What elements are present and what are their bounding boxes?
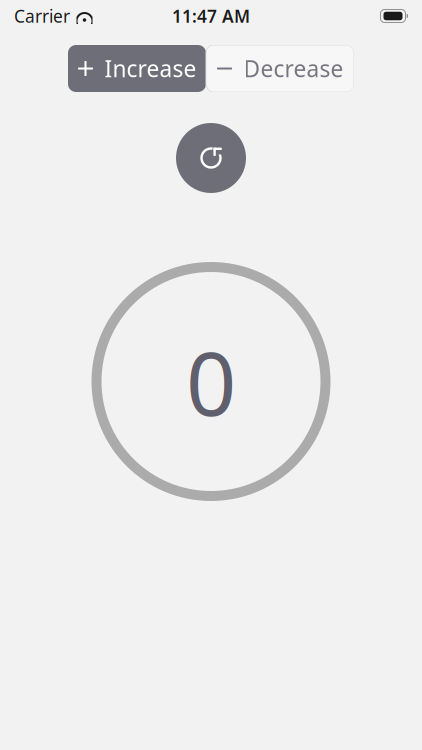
button[interactable]: Increase	[68, 45, 206, 92]
button[interactable]: Decrease	[206, 45, 354, 92]
staticText: 0	[186, 323, 236, 440]
staticText: 11:47 AM	[172, 4, 250, 27]
staticText: Carrier	[14, 4, 70, 27]
staticText: Decrease	[243, 53, 343, 83]
button[interactable]: Reset counter	[176, 123, 246, 193]
staticText: Increase	[104, 53, 196, 83]
